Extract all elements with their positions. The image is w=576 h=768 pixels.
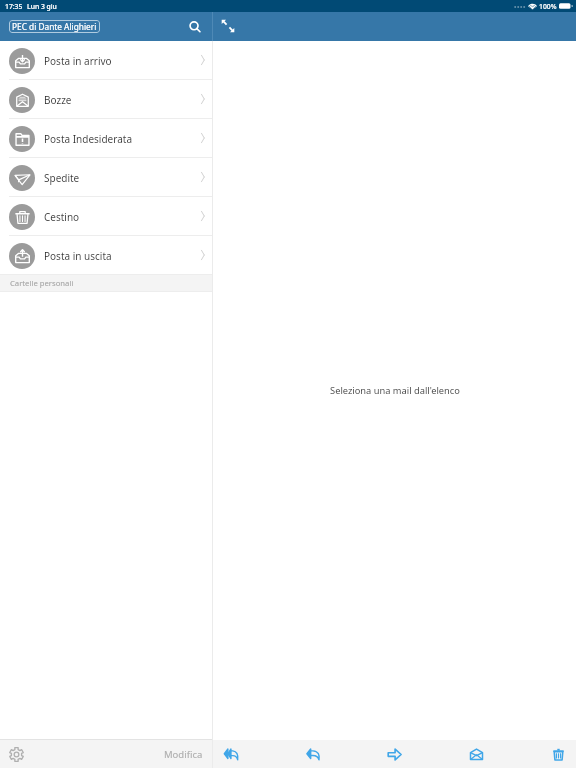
- button[interactable]: Impostazioni: [5, 743, 27, 765]
- staticText: Modifica: [164, 748, 203, 761]
- button[interactable]: Posta in arrivo: [0, 41, 212, 80]
- staticText: Posta in arrivo: [44, 54, 112, 68]
- button[interactable]: Elimina: [545, 741, 571, 767]
- button[interactable]: Spedite: [0, 158, 212, 197]
- staticText: Posta in uscita: [44, 249, 112, 263]
- button[interactable]: PEC di Dante Alighieri: [9, 20, 100, 33]
- button[interactable]: Espandi: [218, 17, 238, 37]
- button[interactable]: Cerca: [185, 17, 205, 37]
- staticText: PEC di Dante Alighieri: [12, 21, 97, 32]
- button[interactable]: Cestino: [0, 197, 212, 236]
- button[interactable]: Nuovo messaggio: [463, 741, 489, 767]
- button[interactable]: Modifica: [164, 748, 203, 761]
- staticText: Spedite: [44, 171, 80, 185]
- staticText: Posta Indesiderata: [44, 132, 132, 146]
- staticText: Cestino: [44, 210, 80, 224]
- staticText: 17:35: [5, 2, 23, 11]
- button[interactable]: Posta in uscita: [0, 236, 212, 275]
- staticText: 100%: [539, 2, 557, 11]
- button[interactable]: Bozze: [0, 80, 212, 119]
- button[interactable]: Inoltra: [381, 741, 407, 767]
- staticText: Seleziona una mail dall'elenco: [330, 384, 460, 397]
- staticText: Cartelle personali: [10, 278, 74, 288]
- button[interactable]: Rispondi a tutti: [218, 741, 244, 767]
- staticText: Bozze: [44, 93, 72, 107]
- staticText: Lun 3 giu: [27, 2, 57, 11]
- button[interactable]: Posta Indesiderata: [0, 119, 212, 158]
- button[interactable]: Rispondi: [300, 741, 326, 767]
